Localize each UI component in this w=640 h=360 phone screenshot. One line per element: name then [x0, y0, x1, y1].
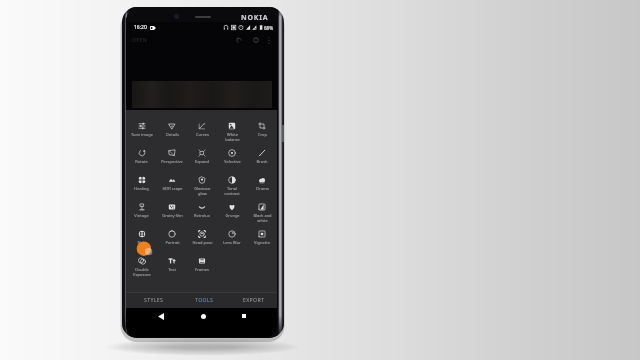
button[interactable]: Vintage [126, 202, 157, 229]
button[interactable]: Vignette [247, 229, 277, 256]
button[interactable]: HDR scape [157, 175, 187, 202]
button[interactable]: EXPORT [232, 293, 276, 305]
button[interactable]: Tonal contrast [217, 175, 247, 202]
staticText: Rotate [135, 159, 148, 164]
button[interactable]: Text [157, 256, 187, 283]
staticText: Drama [256, 186, 269, 191]
button[interactable]: STYLES [132, 293, 176, 305]
button[interactable]: White balance [217, 121, 247, 148]
button[interactable]: Healing [126, 175, 157, 202]
staticText: Head pose [192, 240, 213, 245]
staticText: NOKIA [241, 13, 269, 23]
button[interactable]: Noir [126, 229, 157, 256]
staticText: Curves [196, 132, 209, 137]
button[interactable]: More options [264, 34, 274, 46]
staticText: HDR scape [162, 186, 183, 191]
button[interactable]: Details [157, 121, 187, 148]
button[interactable]: Grainy film [157, 202, 187, 229]
staticText: White balance [225, 132, 240, 142]
button[interactable]: Lens Blur [217, 229, 247, 256]
button[interactable]: Back [153, 308, 169, 324]
staticText: Tune image [131, 132, 153, 137]
button[interactable]: Curves [187, 121, 217, 148]
button[interactable]: Grunge [217, 202, 247, 229]
button[interactable]: Expand [187, 148, 217, 175]
button[interactable]: Rotate [126, 148, 157, 175]
staticText: Retrolux [194, 213, 210, 218]
button[interactable]: Head pose [187, 229, 217, 256]
button[interactable]: Home [195, 308, 211, 324]
button[interactable]: TOOLS [182, 293, 226, 305]
staticText: 68% [264, 25, 273, 31]
staticText: Portrait [165, 240, 180, 245]
staticText: Double Exposure [133, 267, 151, 277]
button[interactable]: Tune image [126, 121, 157, 148]
staticText: Brush [256, 159, 268, 164]
button[interactable]: Portrait [157, 229, 187, 256]
staticText: Text [168, 267, 176, 272]
staticText: Expand [195, 159, 209, 164]
staticText: Glamour glow [194, 186, 211, 196]
staticText: Grunge [225, 213, 240, 218]
staticText: Perspective [161, 159, 183, 164]
staticText: Noir [137, 240, 146, 245]
staticText: Crop [258, 132, 267, 137]
staticText: Healing [134, 186, 149, 191]
button[interactable]: Selective [217, 148, 247, 175]
button[interactable]: Undo [234, 34, 244, 46]
button[interactable]: Retrolux [187, 202, 217, 229]
staticText: TOOLS [195, 296, 214, 303]
staticText: Tonal contrast [224, 186, 240, 196]
staticText: OPEN [132, 37, 147, 44]
button[interactable]: Perspective [157, 148, 187, 175]
staticText: Lens Blur [223, 240, 241, 245]
button[interactable]: Recents [236, 308, 252, 324]
button[interactable]: Brush [247, 148, 277, 175]
button[interactable]: Frames [187, 256, 217, 283]
button[interactable]: Black and white [247, 202, 277, 229]
button[interactable]: Crop [247, 121, 277, 148]
staticText: Black and white [253, 213, 272, 223]
staticText: EXPORT [243, 296, 265, 303]
button[interactable]: Glamour glow [187, 175, 217, 202]
staticText: Selective [224, 159, 241, 164]
button[interactable]: Help [251, 34, 261, 46]
staticText: Vintage [134, 213, 149, 218]
staticText: Details [166, 132, 179, 137]
button[interactable]: Double Exposure [126, 256, 157, 283]
staticText: Vignette [254, 240, 270, 245]
staticText: Grainy film [162, 213, 183, 218]
button[interactable]: Drama [247, 175, 277, 202]
button[interactable]: OPEN [132, 35, 150, 45]
staticText: 16:20 [134, 24, 147, 31]
staticText: Frames [195, 267, 209, 272]
staticText: STYLES [144, 296, 164, 303]
